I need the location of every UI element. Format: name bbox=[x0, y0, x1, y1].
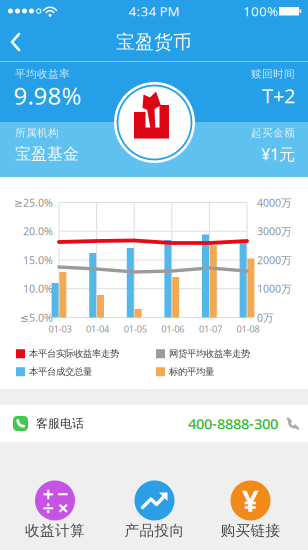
staticText: 01-06 bbox=[161, 323, 184, 335]
staticText: 本平台实际收益率走势 bbox=[29, 348, 119, 359]
staticText: T+2 bbox=[262, 82, 295, 109]
button[interactable]: 产品投向 bbox=[109, 479, 199, 541]
staticText: 赎回时间 bbox=[251, 67, 295, 80]
staticText: 10.0% bbox=[23, 282, 53, 296]
staticText: 2000万 bbox=[257, 253, 292, 267]
button[interactable]: ¥ bbox=[205, 479, 295, 541]
button[interactable]: 客服电话 bbox=[0, 405, 308, 442]
button[interactable]: Back bbox=[0, 22, 40, 62]
staticText: ≥25.0% bbox=[14, 195, 53, 210]
staticText: 产品投向 bbox=[124, 521, 184, 539]
staticText: ¥1元 bbox=[261, 143, 295, 165]
staticText: 400-8888-300 bbox=[188, 414, 278, 433]
staticText: 01-08 bbox=[236, 323, 259, 335]
staticText: ¥ bbox=[242, 481, 259, 520]
staticText: 100% bbox=[243, 2, 278, 20]
staticText: 客服电话 bbox=[36, 416, 84, 431]
staticText: 起买金额 bbox=[251, 126, 295, 139]
staticText: 网贷平均收益率走势 bbox=[169, 348, 250, 359]
staticText: 收益计算 bbox=[25, 521, 85, 539]
staticText: 所属机构 bbox=[15, 126, 59, 139]
staticText: 平均收益率 bbox=[15, 67, 70, 80]
staticText: 宝盈货币 bbox=[116, 30, 192, 53]
staticText: × bbox=[57, 494, 68, 521]
staticText: 20.0% bbox=[23, 224, 53, 238]
staticText: 0万 bbox=[257, 310, 274, 325]
staticText: 9.98% bbox=[13, 80, 81, 111]
staticText: 01-04 bbox=[86, 323, 109, 335]
button[interactable]: + bbox=[10, 479, 100, 541]
staticText: 购买链接 bbox=[220, 521, 280, 539]
staticText: 1000万 bbox=[257, 282, 292, 296]
staticText: 宝盈基金 bbox=[15, 144, 79, 164]
staticText: − bbox=[57, 480, 69, 507]
staticText: + bbox=[42, 480, 53, 507]
staticText: ≤5.0% bbox=[20, 310, 53, 325]
staticText: 4:34 PM bbox=[128, 2, 179, 20]
staticText: 3000万 bbox=[257, 224, 292, 238]
staticText: 本平台成交总量 bbox=[29, 366, 92, 377]
staticText: 标的平均量 bbox=[169, 366, 214, 377]
staticText: 01-05 bbox=[124, 323, 147, 335]
staticText: 4000万 bbox=[257, 195, 292, 210]
staticText: 01-03 bbox=[48, 323, 71, 335]
staticText: 15.0% bbox=[23, 253, 53, 267]
staticText: 01-07 bbox=[199, 323, 222, 335]
staticText: ÷ bbox=[42, 494, 53, 521]
